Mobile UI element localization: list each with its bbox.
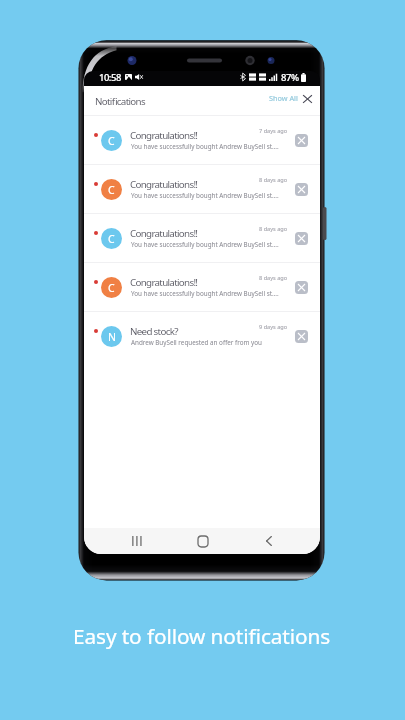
button[interactable]: Home bbox=[186, 528, 220, 554]
staticText: You have successfully bought Andrew BuyS… bbox=[131, 240, 283, 249]
button[interactable]: C bbox=[84, 116, 320, 165]
staticText: Show All bbox=[269, 93, 298, 103]
staticText: 7 days ago bbox=[259, 127, 288, 135]
staticText: Notifications bbox=[95, 95, 145, 108]
staticText: 8 days ago bbox=[259, 225, 288, 233]
staticText: You have successfully bought Andrew BuyS… bbox=[131, 289, 283, 298]
button[interactable]: Dismiss notification bbox=[295, 330, 308, 343]
button[interactable]: N bbox=[84, 312, 320, 361]
staticText: Congratulations!! bbox=[130, 178, 198, 191]
button[interactable]: Show All bbox=[266, 89, 301, 107]
button[interactable]: C bbox=[84, 214, 320, 263]
staticText: 87% bbox=[281, 71, 299, 83]
staticText: You have successfully bought Andrew BuyS… bbox=[131, 142, 283, 151]
button[interactable]: Dismiss notification bbox=[295, 183, 308, 196]
staticText: C bbox=[108, 183, 115, 197]
staticText: 9 days ago bbox=[259, 323, 288, 331]
staticText: Andrew BuySell requested an offer from y… bbox=[131, 338, 283, 347]
staticText: Congratulations!! bbox=[130, 276, 198, 289]
button[interactable]: Dismiss notification bbox=[295, 134, 308, 147]
staticText: Congratulations!! bbox=[130, 129, 198, 142]
staticText: 8 days ago bbox=[259, 176, 288, 184]
staticText: N bbox=[108, 330, 116, 344]
staticText: 8 days ago bbox=[259, 274, 288, 282]
staticText: Easy to follow notifications bbox=[73, 622, 331, 650]
button[interactable]: Close bbox=[299, 91, 315, 107]
staticText: You have successfully bought Andrew BuyS… bbox=[131, 191, 283, 200]
staticText: C bbox=[108, 281, 115, 295]
button[interactable]: Back bbox=[252, 528, 286, 554]
button[interactable]: Dismiss notification bbox=[295, 232, 308, 245]
button[interactable]: Recent apps bbox=[120, 528, 153, 554]
button[interactable]: C bbox=[84, 165, 320, 214]
staticText: 10:58 bbox=[99, 71, 121, 83]
staticText: C bbox=[108, 232, 115, 246]
button[interactable]: Dismiss notification bbox=[295, 281, 308, 294]
button[interactable]: C bbox=[84, 263, 320, 312]
staticText: C bbox=[108, 134, 115, 148]
staticText: Congratulations!! bbox=[130, 227, 198, 240]
staticText: Need stock? bbox=[130, 325, 178, 338]
